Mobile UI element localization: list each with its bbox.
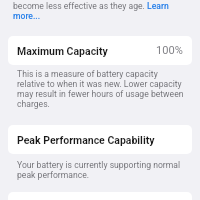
button[interactable]: Peak Performance Capability — [8, 125, 192, 154]
staticText: Maximum Capacity — [17, 45, 108, 57]
staticText: become less effective as they age. Learn… — [13, 1, 180, 21]
staticText: 100% — [156, 44, 183, 57]
staticText: Your battery is currently supporting nor… — [17, 160, 184, 180]
staticText: Peak Performance Capability — [17, 134, 155, 146]
button[interactable]: Maximum Capacity — [8, 36, 192, 65]
staticText: This is a measure of battery capacity re… — [17, 69, 184, 109]
